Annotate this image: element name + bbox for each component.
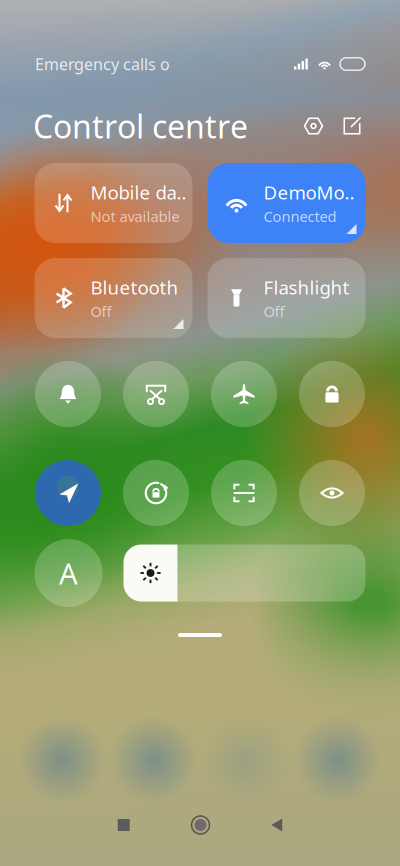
button[interactable]: Auto brightness xyxy=(34,539,102,607)
button[interactable]: Sound xyxy=(35,361,101,427)
staticText: Off xyxy=(263,302,284,321)
button[interactable]: Edit xyxy=(338,112,366,140)
button[interactable]: Location xyxy=(35,460,101,526)
button[interactable]: Settings xyxy=(299,111,328,140)
staticText: Not available xyxy=(90,207,179,226)
button[interactable]: DemoMo.. xyxy=(207,163,365,243)
button[interactable]: Screenshot xyxy=(123,361,189,427)
staticText: A xyxy=(59,553,78,592)
button[interactable]: Auto-rotate xyxy=(123,460,189,526)
button[interactable]: Aeroplane mode xyxy=(211,361,277,427)
button[interactable]: Recents xyxy=(103,804,145,846)
staticText: Flashlight xyxy=(263,275,349,300)
staticText: Emergency calls o xyxy=(35,53,170,75)
staticText: Off xyxy=(90,302,111,321)
button[interactable]: Back xyxy=(256,803,297,846)
button[interactable]: Reading mode xyxy=(299,460,365,526)
staticText: Mobile da.. xyxy=(90,180,186,205)
button[interactable]: Lock xyxy=(299,361,365,427)
button[interactable]: Brightness xyxy=(123,544,365,601)
button[interactable]: Bluetooth xyxy=(34,258,192,338)
staticText: DemoMo.. xyxy=(263,180,354,205)
staticText: Connected xyxy=(263,207,336,226)
button[interactable]: Home xyxy=(175,800,225,850)
button[interactable]: Mobile da.. xyxy=(34,163,192,243)
button[interactable]: Scanner xyxy=(211,460,277,526)
staticText: Control centre xyxy=(33,105,248,147)
staticText: Bluetooth xyxy=(90,275,178,300)
button[interactable]: Flashlight xyxy=(207,258,365,338)
